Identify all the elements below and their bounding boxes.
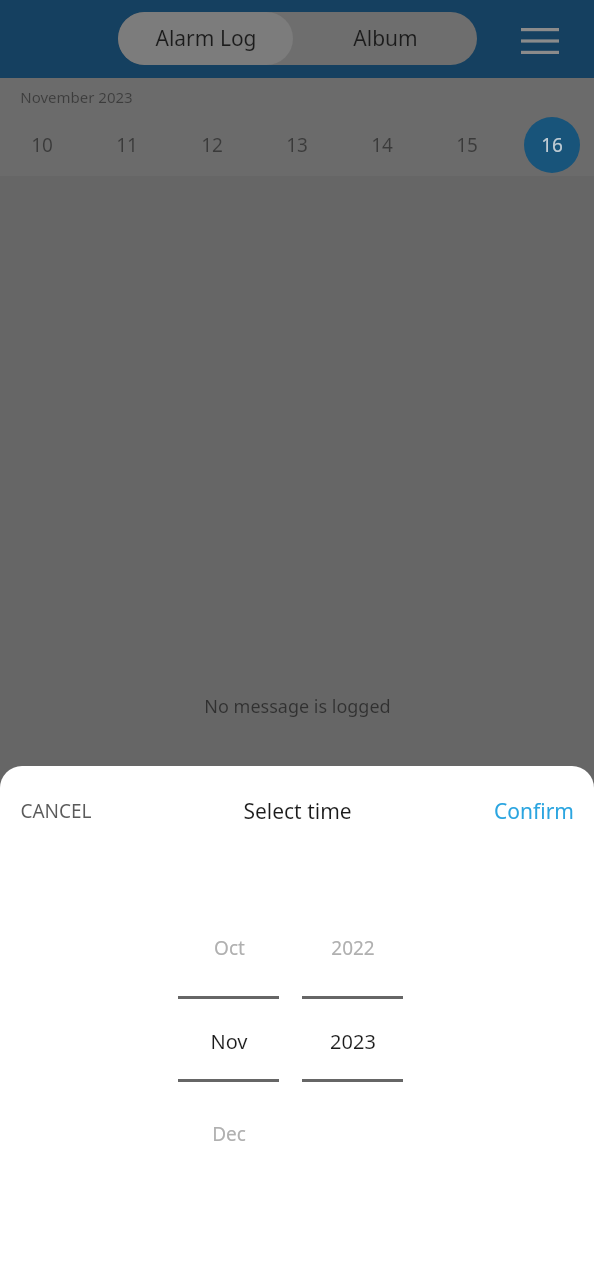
staticText: 14	[371, 132, 393, 158]
staticText: Alarm Log	[155, 24, 257, 53]
staticText: Album	[353, 24, 418, 53]
staticText: 2022	[331, 935, 375, 961]
staticText: 16	[541, 132, 563, 158]
button[interactable]: 12	[184, 117, 240, 173]
staticText: 10	[31, 132, 53, 158]
button[interactable]: 10	[14, 117, 70, 173]
staticText: No message is logged	[204, 694, 391, 719]
button[interactable]: Confirm	[454, 788, 574, 834]
button[interactable]: 16	[524, 117, 580, 173]
staticText: 13	[286, 132, 308, 158]
button[interactable]: Oct	[167, 925, 291, 971]
button[interactable]: 13	[269, 117, 325, 173]
button[interactable]: Alarm Log	[118, 12, 293, 65]
button[interactable]: 2023	[291, 1018, 415, 1064]
staticText: Select time	[243, 797, 352, 826]
staticText: 15	[456, 132, 478, 158]
staticText: Oct	[214, 935, 245, 961]
staticText: CANCEL	[20, 798, 92, 824]
staticText: Dec	[212, 1121, 246, 1147]
staticText: Nov	[210, 1028, 248, 1055]
button[interactable]: 15	[439, 117, 495, 173]
button[interactable]: Menu	[512, 13, 568, 69]
button[interactable]: 2022	[291, 925, 415, 971]
button[interactable]: Dec	[167, 1111, 291, 1157]
staticText: 12	[201, 132, 223, 158]
staticText: Confirm	[494, 797, 574, 826]
staticText: 2023	[330, 1028, 376, 1055]
button[interactable]: 14	[354, 117, 410, 173]
staticText: November 2023	[20, 87, 133, 107]
button[interactable]: CANCEL	[20, 788, 140, 834]
button[interactable]: Nov	[167, 1018, 291, 1064]
staticText: 11	[116, 132, 138, 158]
button[interactable]: 11	[99, 117, 155, 173]
button[interactable]: Album	[293, 12, 477, 65]
